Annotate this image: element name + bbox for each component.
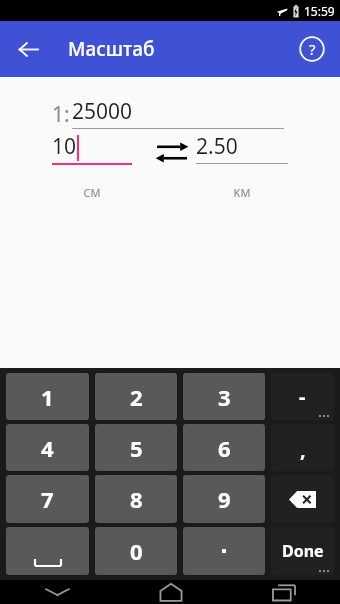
button[interactable]: 25000 — [72, 97, 284, 129]
button[interactable] — [6, 527, 89, 575]
staticText: 6 — [218, 433, 231, 463]
button[interactable]: Help — [290, 27, 334, 71]
button[interactable]: 8 — [95, 475, 177, 523]
staticText: 4 — [41, 433, 54, 463]
staticText: 3 — [218, 382, 231, 412]
staticText: 10 — [52, 132, 77, 161]
staticText: 9 — [218, 484, 231, 514]
button[interactable]: 3 — [183, 373, 265, 420]
staticText: 2.50 — [196, 132, 238, 161]
button[interactable]: Recent apps — [227, 580, 340, 604]
staticText: 5 — [130, 433, 143, 463]
staticText: 7 — [41, 484, 54, 514]
button[interactable]: 2.50 — [196, 132, 288, 164]
staticText: 25000 — [72, 97, 133, 126]
button[interactable]: Swap units — [152, 135, 192, 169]
button[interactable] — [183, 527, 265, 575]
button[interactable]: 9 — [183, 475, 265, 523]
staticText: KM — [196, 185, 288, 200]
staticText: Done — [282, 540, 324, 562]
button[interactable]: 6 — [183, 424, 265, 471]
button[interactable]: 5 — [95, 424, 177, 471]
staticText: 8 — [130, 484, 143, 514]
button[interactable]: Hide keyboard — [0, 580, 114, 604]
button[interactable]: Home — [114, 580, 227, 604]
button[interactable]: Backspace — [271, 475, 334, 523]
button[interactable]: 4 — [6, 424, 89, 471]
button[interactable]: 10 — [52, 132, 132, 165]
staticText: 2 — [130, 382, 143, 412]
staticText: , — [300, 436, 306, 463]
staticText: 1 — [41, 382, 54, 412]
staticText: - — [299, 383, 306, 410]
staticText: Масштаб — [68, 36, 155, 62]
button[interactable]: 2 — [95, 373, 177, 420]
staticText: 15:59 — [304, 3, 335, 19]
button[interactable]: Back — [6, 27, 50, 71]
staticText: CM — [52, 185, 132, 200]
button[interactable]: 1 — [6, 373, 89, 420]
button[interactable]: Comma — [271, 424, 334, 471]
staticText: 0 — [130, 536, 143, 566]
staticText: ? — [309, 39, 316, 59]
button[interactable]: 7 — [6, 475, 89, 523]
button[interactable]: Minus — [271, 373, 334, 420]
button[interactable]: 0 — [95, 527, 177, 575]
button[interactable]: Done — [271, 527, 334, 575]
staticText: 1: — [52, 100, 70, 129]
